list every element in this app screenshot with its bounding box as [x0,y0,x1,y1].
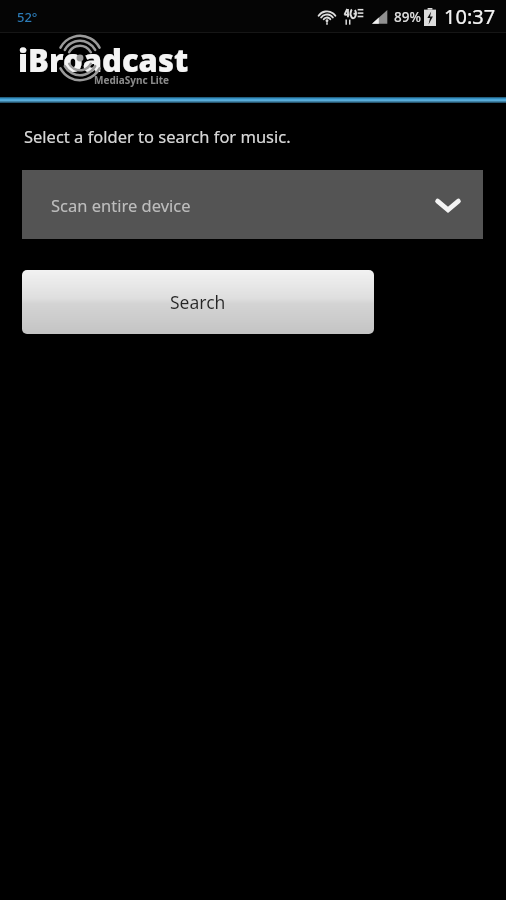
staticText: 52° [17,8,38,26]
staticText: 10:37 [444,3,496,30]
button[interactable]: iBroadcast MediaSync Lite [18,42,189,88]
staticText: Search [170,290,226,314]
staticText: iBroadcast [18,39,189,81]
button[interactable]: Scan entire device [22,170,483,239]
staticText: MediaSync Lite [94,73,170,87]
staticText: 89% [394,8,421,26]
staticText: Select a folder to search for music. [24,125,291,147]
button[interactable]: Search [22,270,374,334]
staticText: Scan entire device [51,194,191,216]
